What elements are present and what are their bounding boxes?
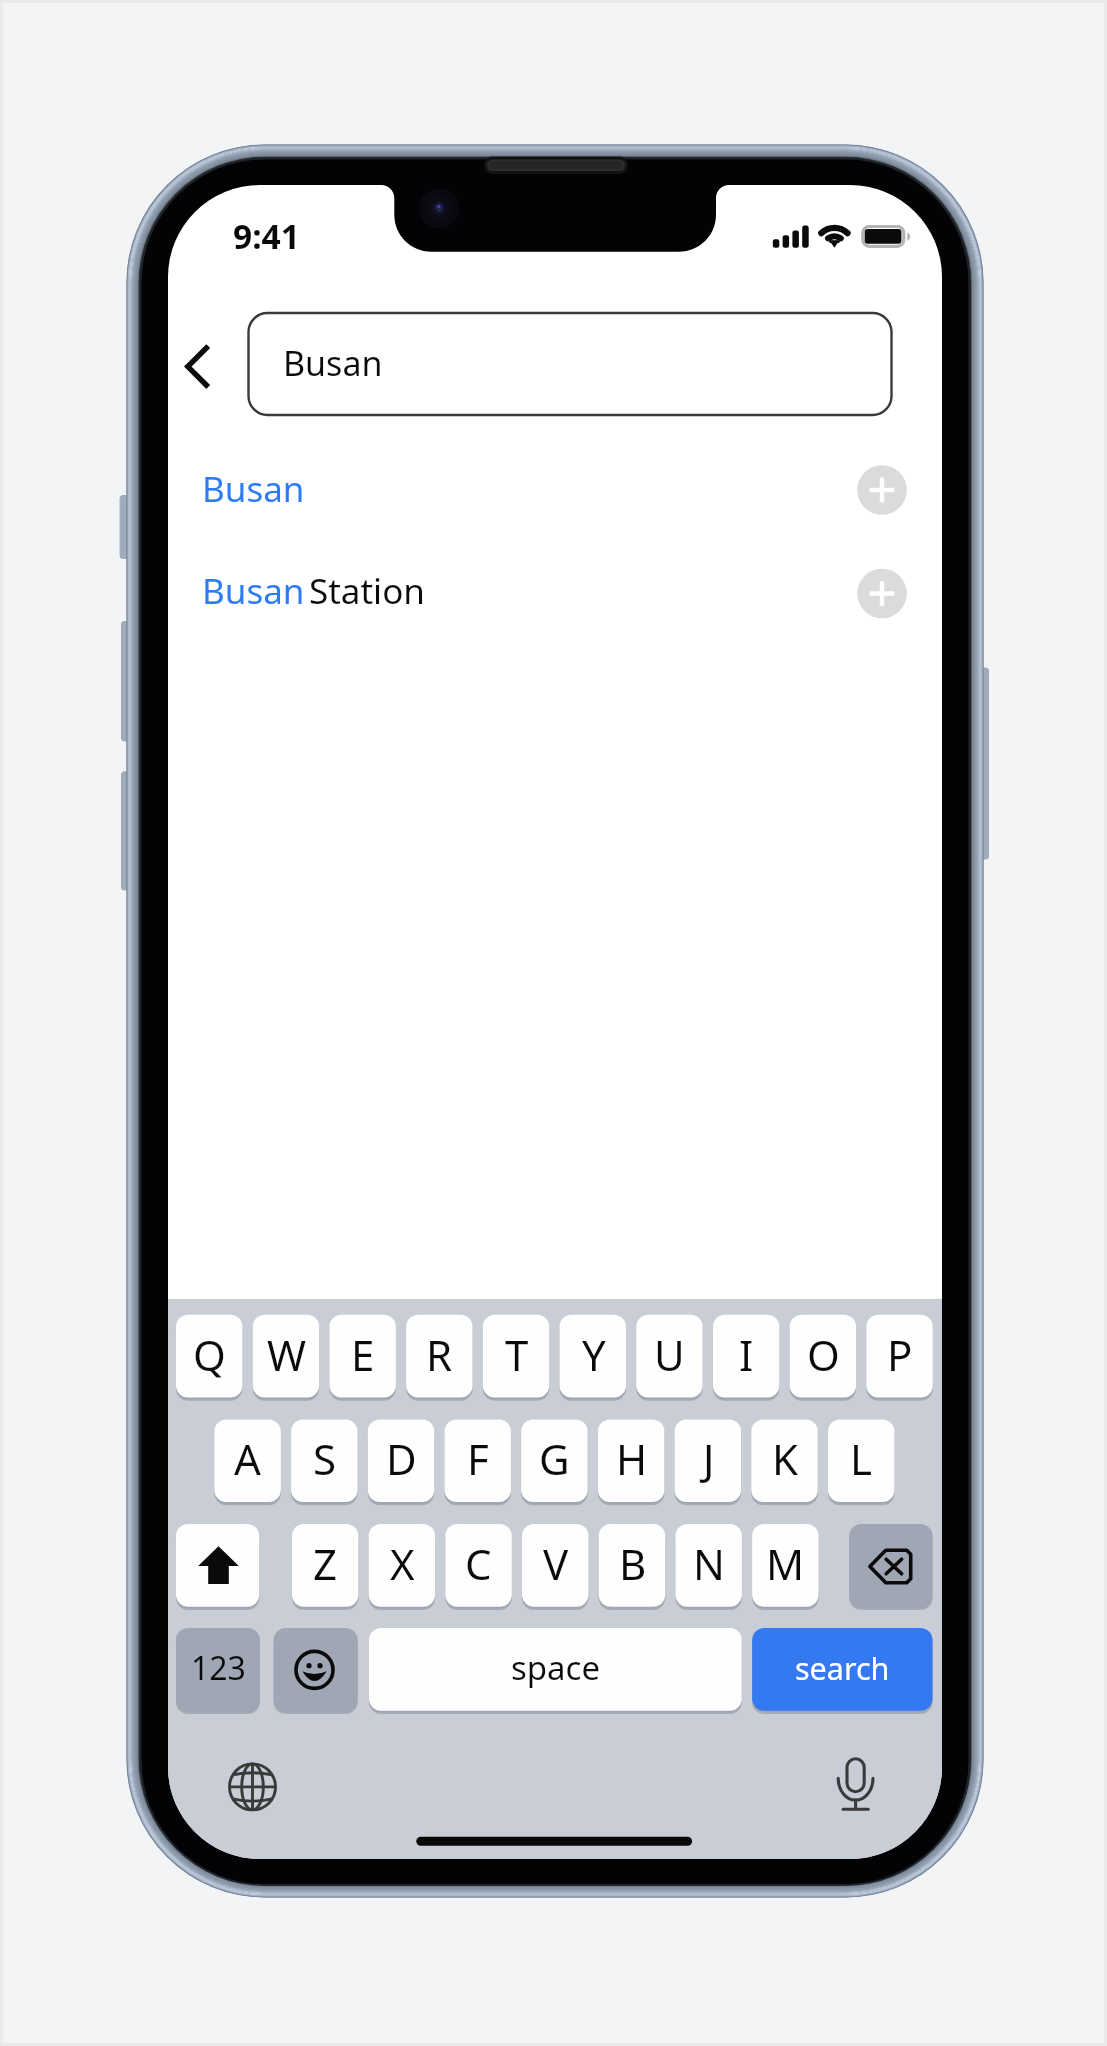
staticText: H <box>616 1430 648 1487</box>
button[interactable]: A <box>214 1419 281 1502</box>
button[interactable]: P <box>866 1315 933 1398</box>
staticText: 123 <box>191 1646 246 1690</box>
button[interactable]: B <box>599 1524 666 1607</box>
button[interactable]: search <box>752 1628 932 1711</box>
button[interactable]: Emoji <box>274 1628 358 1711</box>
button[interactable]: K <box>751 1419 818 1502</box>
button[interactable]: X <box>369 1524 436 1607</box>
button[interactable]: Add <box>857 569 907 619</box>
button[interactable]: W <box>253 1315 320 1398</box>
button[interactable]: Busan <box>168 449 942 532</box>
staticText: O <box>807 1326 840 1383</box>
button[interactable]: Y <box>560 1315 627 1398</box>
staticText: Busan <box>283 340 383 386</box>
button[interactable]: E <box>329 1315 396 1398</box>
staticText: V <box>543 1535 569 1592</box>
button[interactable]: S <box>291 1419 358 1502</box>
staticText: Station <box>309 567 425 615</box>
staticText: Busan <box>202 465 305 513</box>
staticText: Busan <box>202 567 305 615</box>
staticText: 9:41 <box>233 213 300 259</box>
staticText: U <box>654 1326 685 1383</box>
button[interactable]: R <box>406 1315 473 1398</box>
staticText: T <box>505 1326 529 1383</box>
staticText: I <box>739 1326 754 1383</box>
button[interactable]: H <box>598 1419 665 1502</box>
staticText: P <box>887 1326 913 1383</box>
button[interactable]: D <box>368 1419 435 1502</box>
staticText: D <box>386 1430 417 1487</box>
button[interactable]: V <box>522 1524 589 1607</box>
staticText: W <box>267 1326 307 1383</box>
staticText: K <box>772 1430 798 1487</box>
staticText: A <box>234 1430 261 1487</box>
staticText: search <box>795 1647 890 1689</box>
button[interactable]: Busan <box>248 313 891 415</box>
button[interactable]: C <box>445 1524 512 1607</box>
staticText: B <box>619 1535 647 1592</box>
button[interactable]: Z <box>292 1524 359 1607</box>
staticText: N <box>693 1535 725 1592</box>
button[interactable]: J <box>675 1419 742 1502</box>
staticText: M <box>766 1535 805 1592</box>
button[interactable]: I <box>713 1315 780 1398</box>
button[interactable]: Busan <box>168 552 942 635</box>
staticText: S <box>313 1430 337 1487</box>
button[interactable]: 123 <box>176 1628 260 1711</box>
staticText: G <box>539 1430 570 1487</box>
staticText: J <box>703 1430 715 1487</box>
button[interactable]: N <box>675 1524 742 1607</box>
staticText: Y <box>582 1326 606 1383</box>
staticText: space <box>511 1645 601 1690</box>
button[interactable]: F <box>444 1419 511 1502</box>
staticText: F <box>467 1430 489 1487</box>
staticText: C <box>465 1535 492 1592</box>
button[interactable]: Q <box>176 1315 243 1398</box>
staticText: R <box>426 1326 453 1383</box>
staticText: X <box>390 1535 415 1592</box>
staticText: E <box>351 1326 375 1383</box>
button[interactable]: space <box>369 1628 742 1711</box>
button[interactable]: Shift <box>176 1524 259 1607</box>
button[interactable]: Back <box>176 330 224 402</box>
button[interactable]: Backspace <box>849 1524 932 1607</box>
button[interactable]: U <box>636 1315 703 1398</box>
button[interactable]: Dictate <box>826 1755 886 1815</box>
staticText: Z <box>313 1535 338 1592</box>
button[interactable]: Change keyboard <box>222 1757 283 1817</box>
button[interactable]: L <box>828 1419 895 1502</box>
staticText: Q <box>193 1326 226 1383</box>
button[interactable]: G <box>521 1419 588 1502</box>
button[interactable]: O <box>790 1315 857 1398</box>
button[interactable]: T <box>483 1315 550 1398</box>
button[interactable]: Add <box>857 465 907 515</box>
button[interactable]: M <box>752 1524 819 1607</box>
staticText: L <box>850 1430 873 1487</box>
